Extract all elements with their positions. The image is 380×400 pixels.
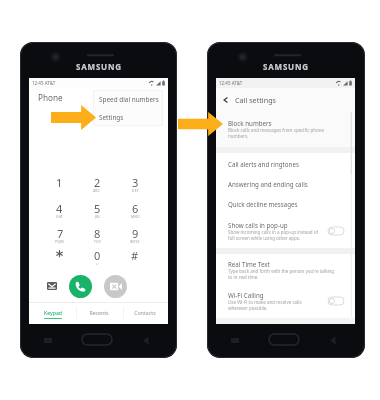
- button[interactable]: 1: [41, 175, 78, 199]
- staticText: 12:45 AT&T: [32, 80, 56, 86]
- other: Back: [222, 96, 230, 104]
- staticText: to in real time.: [228, 274, 259, 280]
- staticText: DEF: [132, 188, 139, 192]
- staticText: wherever possible.: [228, 305, 268, 311]
- button[interactable]: #: [116, 248, 154, 272]
- staticText: 12:45 AT&T: [219, 80, 243, 86]
- staticText: Contacts: [134, 309, 156, 316]
- staticText: JKL: [95, 214, 101, 218]
- button[interactable]: Recent apps: [41, 334, 55, 347]
- button[interactable]: 6: [116, 201, 154, 225]
- button[interactable]: 3: [116, 175, 154, 199]
- button[interactable]: Recents: [76, 303, 122, 324]
- staticText: 2: [94, 175, 101, 190]
- button[interactable]: Recent apps: [228, 334, 242, 347]
- button[interactable]: [41, 248, 78, 272]
- staticText: 3: [132, 175, 139, 190]
- staticText: Settings: [99, 113, 124, 122]
- button[interactable]: 7: [41, 226, 78, 250]
- staticText: numbers.: [228, 133, 249, 139]
- staticText: Call alerts and ringtones: [228, 160, 299, 168]
- button[interactable]: Quick decline messages: [216, 194, 355, 213]
- button[interactable]: Block numbers: [216, 111, 355, 147]
- staticText: Block numbers: [228, 119, 272, 127]
- button[interactable]: Wi-Fi Calling: [216, 286, 355, 316]
- staticText: SAMSUNG: [263, 61, 309, 72]
- button[interactable]: Back: [326, 334, 340, 347]
- staticText: Phone: [38, 92, 63, 103]
- button[interactable]: Keypad: [29, 303, 76, 324]
- staticText: Recents: [89, 309, 109, 316]
- button[interactable]: Call: [69, 275, 92, 298]
- staticText: #: [131, 248, 139, 263]
- staticText: Use Wi-Fi to make and receive calls: [228, 299, 302, 305]
- staticText: MNO: [131, 214, 140, 218]
- staticText: Answering and ending calls: [228, 180, 308, 188]
- staticText: Wi-Fi Calling: [228, 291, 264, 299]
- staticText: 0: [94, 248, 101, 263]
- staticText: Speed dial numbers: [99, 95, 159, 104]
- staticText: WXYZ: [130, 239, 140, 243]
- staticText: 7: [57, 226, 64, 241]
- staticText: ABC: [93, 188, 101, 192]
- button[interactable]: 2: [78, 175, 116, 199]
- button[interactable]: Video call: [104, 275, 127, 298]
- button[interactable]: Real Time Text: [216, 252, 355, 287]
- staticText: Block calls and messages from specific p…: [228, 127, 325, 133]
- button[interactable]: 5: [78, 201, 116, 225]
- staticText: full screen while using other apps.: [228, 235, 301, 241]
- staticText: SAMSUNG: [76, 61, 122, 72]
- button[interactable]: Show calls in pop-up: [216, 213, 355, 248]
- staticText: Quick decline messages: [228, 200, 298, 208]
- staticText: 6: [132, 201, 139, 216]
- button[interactable]: Answering and ending calls: [216, 174, 355, 194]
- staticText: Type back and forth with the person you'…: [228, 268, 335, 274]
- staticText: 5: [94, 201, 101, 216]
- staticText: 1: [56, 175, 63, 190]
- staticText: PQRS: [55, 239, 65, 243]
- button[interactable]: Home: [269, 334, 299, 345]
- button[interactable]: Speed dial numbers: [93, 90, 163, 108]
- staticText: 4: [56, 201, 63, 216]
- button[interactable]: Contacts: [122, 303, 168, 324]
- staticText: 8: [94, 226, 101, 241]
- staticText: Keypad: [44, 309, 62, 316]
- button[interactable]: Back: [139, 334, 153, 347]
- button[interactable]: Toggle Wi-Fi Calling: [328, 297, 344, 305]
- staticText: 9: [132, 226, 139, 241]
- staticText: Call settings: [235, 95, 276, 105]
- button[interactable]: Home: [82, 334, 112, 345]
- button[interactable]: Call alerts and ringtones: [216, 153, 355, 174]
- button[interactable]: Toggle Show calls in pop-up: [328, 227, 344, 235]
- button[interactable]: 0: [78, 248, 116, 272]
- staticText: Real Time Text: [228, 260, 270, 268]
- staticText: Show incoming calls in a pop-up instead …: [228, 229, 319, 235]
- staticText: Show calls in pop-up: [228, 221, 288, 229]
- staticText: GHI: [56, 214, 63, 218]
- button[interactable]: 9: [116, 226, 154, 250]
- button[interactable]: Back: [216, 88, 355, 111]
- button[interactable]: Message: [41, 275, 63, 297]
- staticText: TUV: [94, 239, 101, 243]
- button[interactable]: 4: [41, 201, 78, 225]
- staticText: +: [96, 261, 99, 265]
- button[interactable]: 8: [78, 226, 116, 250]
- button[interactable]: Settings: [93, 108, 163, 126]
